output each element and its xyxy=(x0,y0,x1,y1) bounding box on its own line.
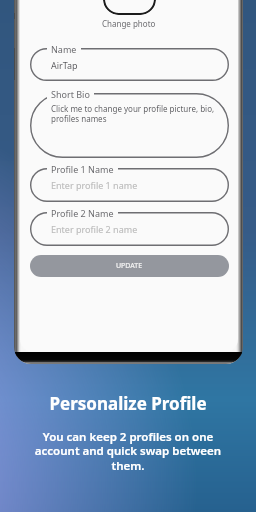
staticText: AirTap xyxy=(51,59,78,71)
button[interactable]: Profile 1 Name xyxy=(30,168,229,202)
staticText: Profile 2 Name xyxy=(51,207,114,219)
staticText: Change photo xyxy=(102,18,156,29)
staticText: Click me to change your profile picture,… xyxy=(51,103,215,124)
staticText: UPDATE xyxy=(116,261,143,271)
staticText: Short Bio xyxy=(51,88,90,100)
staticText: Enter profile 1 name xyxy=(51,179,138,191)
staticText: You can keep 2 profiles on one account a… xyxy=(24,429,232,474)
staticText: Personalize Profile xyxy=(49,392,207,415)
button[interactable]: UPDATE xyxy=(30,255,229,277)
staticText: Profile 1 Name xyxy=(51,163,114,175)
button[interactable]: Short Bio xyxy=(30,93,229,158)
button[interactable]: Profile 2 Name xyxy=(30,212,229,246)
button[interactable]: Change photo xyxy=(103,0,156,15)
staticText: Enter profile 2 name xyxy=(51,223,138,235)
staticText: Name xyxy=(51,43,77,55)
button[interactable]: Name xyxy=(30,48,229,81)
